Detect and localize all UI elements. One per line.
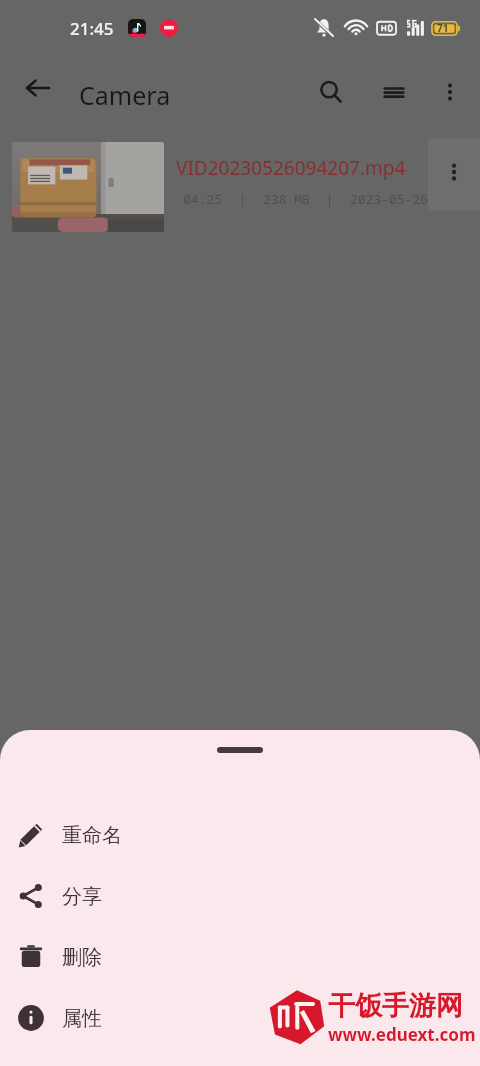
staticText: 分享 — [62, 884, 102, 909]
staticText: 重命名 — [62, 823, 122, 848]
button[interactable]: Back — [12, 62, 64, 114]
button[interactable]: Item options — [430, 148, 478, 196]
staticText: 238 MB — [263, 190, 310, 208]
button[interactable]: 重命名 — [0, 808, 480, 862]
button[interactable]: VID20230526094207.mp4 — [0, 136, 480, 238]
staticText: 2023-05-26 — [350, 190, 429, 208]
staticText: www.eduext.com — [328, 1023, 476, 1046]
staticText: 干饭手游网 — [328, 989, 463, 1023]
button[interactable]: More options — [424, 66, 476, 118]
staticText: VID20230526094207.mp4 — [176, 155, 406, 181]
button[interactable]: 删除 — [0, 930, 480, 984]
button[interactable]: Change view — [368, 66, 420, 118]
staticText: 属性 — [62, 1006, 102, 1031]
button[interactable]: 属性 — [0, 991, 480, 1045]
staticText: 71 — [437, 21, 449, 35]
staticText: Camera — [79, 78, 171, 112]
button[interactable]: 分享 — [0, 869, 480, 923]
staticText: 删除 — [62, 945, 102, 970]
button[interactable]: Search — [305, 66, 357, 118]
staticText: 21:45 — [70, 17, 114, 40]
staticText: 04:25 — [183, 190, 223, 208]
